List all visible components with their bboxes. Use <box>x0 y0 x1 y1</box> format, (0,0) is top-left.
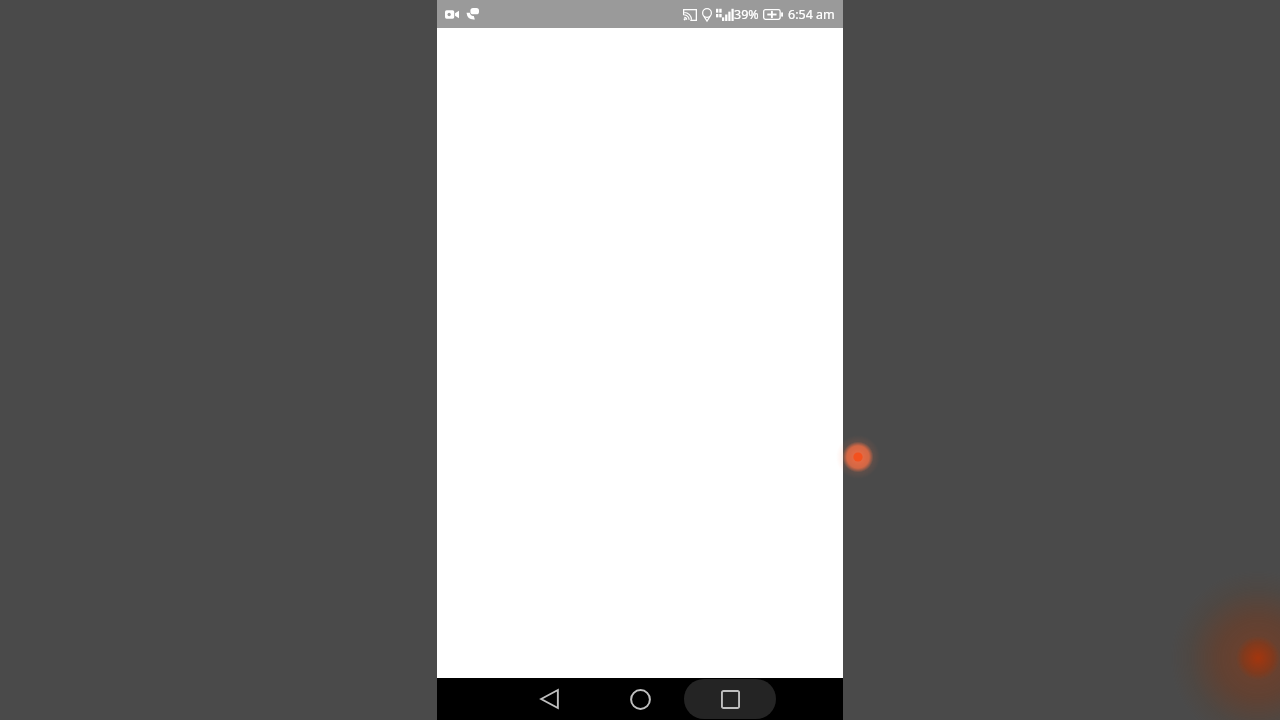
button[interactable]: Home <box>619 678 661 720</box>
staticText: 6:54 am <box>788 6 835 23</box>
staticText: 39% <box>734 6 759 23</box>
button[interactable]: Back <box>528 678 570 720</box>
button[interactable]: Recent apps <box>684 679 776 719</box>
